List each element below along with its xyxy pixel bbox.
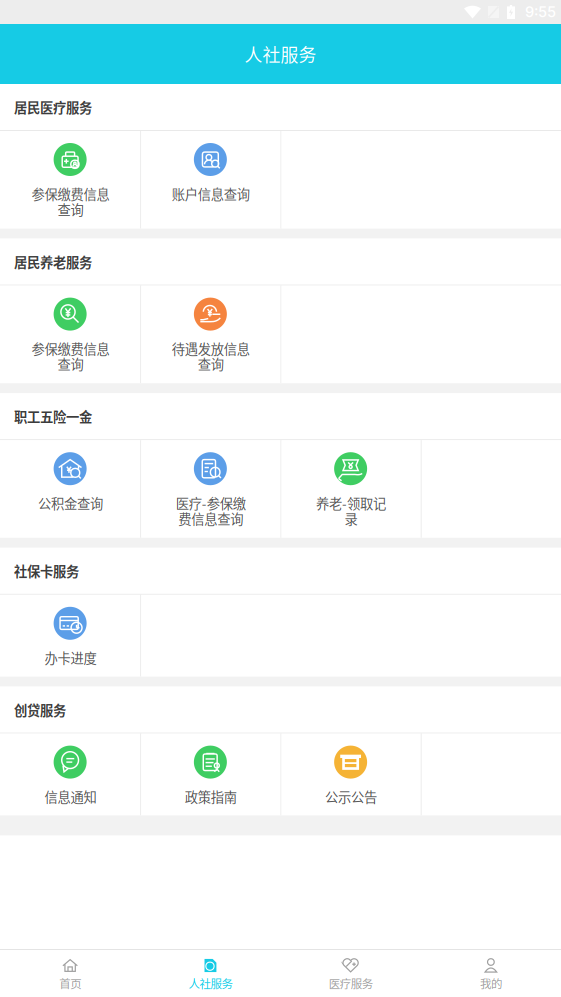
button[interactable]: 待遇发放信息查询 <box>140 286 280 383</box>
staticText: 参保缴费信息查询 <box>31 186 109 217</box>
staticText: 社保卡服务 <box>14 561 79 580</box>
button[interactable]: 人社服务 <box>140 950 280 997</box>
staticText: 9:55 <box>525 3 556 21</box>
button[interactable]: 参保缴费信息查询 <box>0 286 140 383</box>
staticText: 医疗-参保缴费信息查询 <box>175 495 245 526</box>
button[interactable]: 参保缴费信息查询 <box>0 131 140 229</box>
staticText: 办卡进度 <box>44 650 96 665</box>
button[interactable]: 公积金查询 <box>0 440 140 538</box>
button[interactable]: 养老-领取记录 <box>280 440 421 538</box>
staticText: 职工五险一金 <box>14 406 92 426</box>
button[interactable]: 我的 <box>421 950 561 997</box>
staticText: 创贷服务 <box>14 700 66 719</box>
staticText: 医疗服务 <box>329 975 373 992</box>
staticText: 居民养老服务 <box>14 252 92 271</box>
button[interactable]: 信息通知 <box>0 734 140 815</box>
staticText: 账户信息查询 <box>171 186 249 201</box>
staticText: 参保缴费信息查询 <box>31 341 109 371</box>
staticText: 信息通知 <box>44 789 96 804</box>
staticText: 政策指南 <box>184 789 236 804</box>
staticText: 居民医疗服务 <box>14 97 92 117</box>
staticText: 公示公告 <box>325 789 377 804</box>
button[interactable]: 医疗服务 <box>280 950 421 997</box>
button[interactable]: 政策指南 <box>140 734 280 815</box>
staticText: 我的 <box>480 975 502 992</box>
button[interactable]: 公示公告 <box>280 734 421 815</box>
button[interactable]: 首页 <box>0 950 140 997</box>
staticText: 人社服务 <box>188 975 232 992</box>
staticText: 待遇发放信息查询 <box>171 341 249 371</box>
button[interactable]: 医疗-参保缴费信息查询 <box>140 440 280 538</box>
staticText: 公积金查询 <box>38 495 103 511</box>
staticText: 养老-领取记录 <box>316 495 386 526</box>
staticText: 人社服务 <box>244 41 316 67</box>
button[interactable]: 办卡进度 <box>0 595 140 677</box>
staticText: 首页 <box>59 975 81 992</box>
button[interactable]: 账户信息查询 <box>140 131 280 229</box>
